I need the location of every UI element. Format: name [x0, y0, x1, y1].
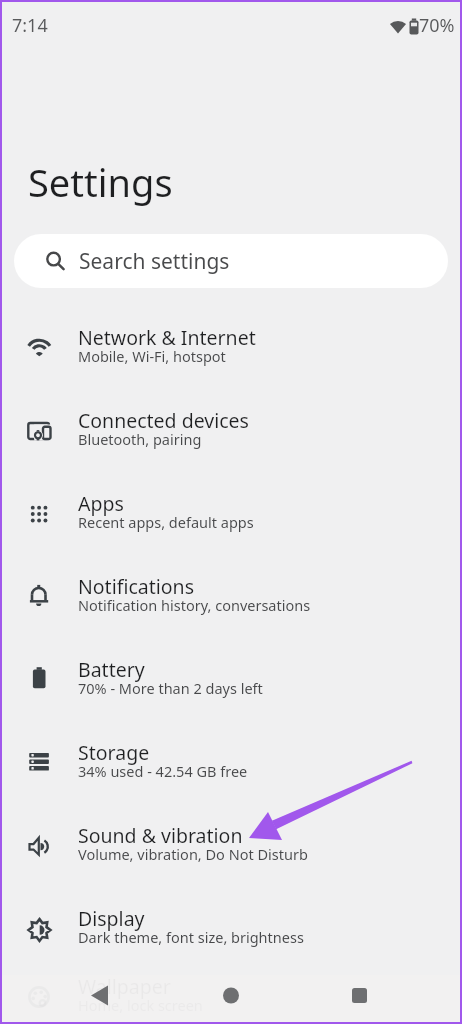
button[interactable]	[0, 975, 154, 1024]
staticText: Volume, vibration, Do Not Disturb	[78, 844, 308, 864]
staticText: Display	[78, 905, 145, 932]
staticText: 70% - More than 2 days left	[78, 678, 263, 698]
staticText: Sound & vibration	[78, 822, 243, 849]
staticText: Notification history, conversations	[78, 595, 311, 615]
button[interactable]: Notifications	[0, 557, 462, 640]
button[interactable]: Network & Internet	[0, 308, 462, 391]
button[interactable]: Search settings	[14, 234, 448, 288]
staticText: Search settings	[79, 247, 230, 276]
staticText: 34% used - 42.54 GB free	[78, 761, 248, 781]
staticText: Home, lock screen	[78, 995, 203, 1015]
button[interactable]: Sound & vibration	[0, 806, 462, 889]
button[interactable]	[308, 975, 462, 1024]
button[interactable]: Battery	[0, 640, 462, 723]
staticText: Dark theme, font size, brightness	[78, 927, 304, 947]
staticText: Bluetooth, pairing	[78, 429, 202, 449]
staticText: Recent apps, default apps	[78, 512, 254, 532]
button[interactable]: Wallpaper	[0, 972, 462, 1024]
staticText: Network & Internet	[78, 324, 256, 351]
staticText: Notifications	[78, 573, 194, 600]
button[interactable]	[154, 975, 308, 1024]
staticText: Settings	[28, 156, 173, 208]
staticText: 7:14	[12, 13, 48, 38]
staticText: Battery	[78, 656, 145, 683]
button[interactable]: Display	[0, 889, 462, 972]
staticText: 70%	[419, 13, 455, 38]
staticText: Apps	[78, 490, 124, 517]
button[interactable]: Connected devices	[0, 391, 462, 474]
staticText: Connected devices	[78, 407, 249, 434]
staticText: Mobile, Wi-Fi, hotspot	[78, 346, 226, 366]
button[interactable]: Apps	[0, 474, 462, 557]
staticText: Storage	[78, 739, 150, 766]
staticText: Wallpaper	[78, 973, 171, 1000]
button[interactable]: Storage	[0, 723, 462, 806]
